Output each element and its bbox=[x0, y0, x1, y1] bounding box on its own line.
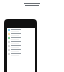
button[interactable] bbox=[7, 36, 35, 40]
button[interactable] bbox=[7, 52, 35, 56]
button[interactable] bbox=[7, 28, 35, 32]
button[interactable] bbox=[7, 48, 35, 52]
button[interactable] bbox=[7, 40, 35, 44]
button[interactable] bbox=[7, 44, 35, 48]
button[interactable] bbox=[7, 32, 35, 36]
